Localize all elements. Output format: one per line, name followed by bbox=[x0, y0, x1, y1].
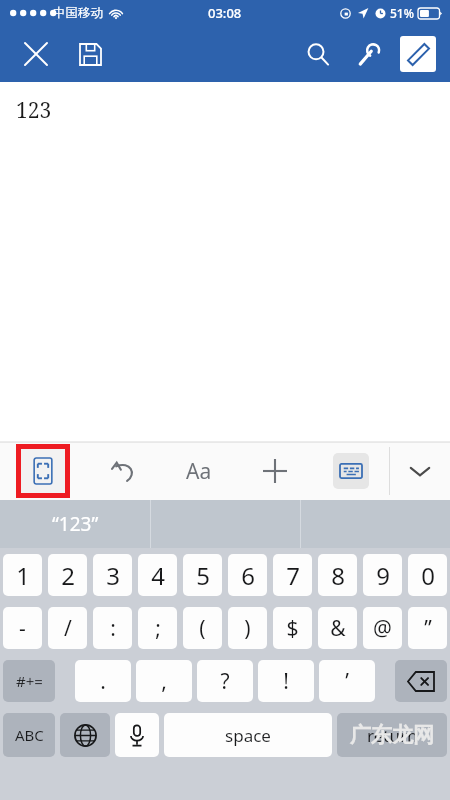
staticText: 1 bbox=[16, 559, 30, 592]
staticText: $ bbox=[286, 614, 299, 643]
button[interactable]: 8 bbox=[318, 554, 357, 596]
button[interactable]: / bbox=[48, 607, 87, 649]
button[interactable]: ? bbox=[197, 660, 253, 702]
staticText: 3 bbox=[106, 559, 120, 592]
button[interactable]: ’ bbox=[319, 660, 375, 702]
button[interactable]: Keyboard bbox=[313, 442, 389, 500]
staticText: ’ bbox=[345, 667, 349, 696]
button[interactable]: 2 bbox=[48, 554, 87, 596]
staticText: ( bbox=[199, 614, 206, 643]
staticText: / bbox=[64, 614, 72, 643]
button[interactable]: ; bbox=[138, 607, 177, 649]
button[interactable]: ! bbox=[258, 660, 314, 702]
button[interactable]: : bbox=[93, 607, 132, 649]
staticText: 7 bbox=[286, 559, 300, 592]
button[interactable]: Backspace bbox=[395, 660, 447, 702]
button[interactable]: 3 bbox=[93, 554, 132, 596]
staticText: 0 bbox=[421, 559, 435, 592]
button[interactable]: ” bbox=[408, 607, 447, 649]
staticText: 51% bbox=[390, 5, 414, 21]
staticText: return bbox=[367, 724, 418, 747]
staticText: “123” bbox=[52, 511, 99, 537]
staticText: 6 bbox=[241, 559, 255, 592]
staticText: - bbox=[19, 614, 26, 643]
button[interactable]: Save bbox=[68, 32, 112, 76]
button[interactable]: 0 bbox=[408, 554, 447, 596]
staticText: ABC bbox=[15, 725, 44, 745]
button[interactable]: $ bbox=[273, 607, 312, 649]
button[interactable]: & bbox=[318, 607, 357, 649]
button[interactable]: Insert bbox=[237, 442, 313, 500]
staticText: & bbox=[330, 614, 346, 643]
button[interactable]: , bbox=[136, 660, 192, 702]
staticText: . bbox=[100, 667, 106, 696]
button[interactable]: 7 bbox=[273, 554, 312, 596]
button[interactable]: 5 bbox=[183, 554, 222, 596]
button[interactable]: 6 bbox=[228, 554, 267, 596]
staticText: : bbox=[110, 614, 116, 643]
staticText: space bbox=[225, 724, 271, 747]
staticText: 123 bbox=[16, 96, 52, 125]
button[interactable]: Close bbox=[14, 32, 58, 76]
button[interactable]: ( bbox=[183, 607, 222, 649]
staticText: ” bbox=[424, 614, 432, 643]
button[interactable]: Edit bbox=[396, 32, 440, 76]
staticText: 5 bbox=[196, 559, 210, 592]
staticText: , bbox=[161, 667, 167, 696]
staticText: 2 bbox=[61, 559, 75, 592]
button[interactable]: 4 bbox=[138, 554, 177, 596]
button[interactable]: Font bbox=[161, 442, 237, 500]
button[interactable]: #+= bbox=[3, 660, 55, 702]
button[interactable]: @ bbox=[363, 607, 402, 649]
button[interactable]: 9 bbox=[363, 554, 402, 596]
button[interactable]: space bbox=[164, 713, 332, 757]
staticText: 中国移动 bbox=[53, 5, 103, 21]
staticText: ! bbox=[283, 667, 289, 696]
staticText: ; bbox=[155, 614, 161, 643]
button[interactable]: . bbox=[75, 660, 131, 702]
button[interactable]: Undo bbox=[86, 442, 161, 500]
button[interactable]: Expand bbox=[0, 442, 86, 500]
staticText: 8 bbox=[331, 559, 345, 592]
button[interactable]: Hide keyboard bbox=[390, 442, 450, 500]
staticText: 03:08 bbox=[208, 4, 242, 22]
button[interactable]: Search bbox=[296, 32, 340, 76]
button[interactable]: Tools bbox=[346, 32, 390, 76]
staticText: 9 bbox=[376, 559, 390, 592]
button[interactable]: ABC bbox=[3, 713, 55, 757]
staticText: 4 bbox=[151, 559, 165, 592]
button[interactable]: 1 bbox=[3, 554, 42, 596]
staticText: @ bbox=[373, 614, 392, 643]
staticText: #+= bbox=[16, 671, 43, 691]
staticText: 广东龙网 bbox=[350, 722, 434, 748]
button[interactable]: ) bbox=[228, 607, 267, 649]
staticText: ) bbox=[244, 614, 251, 643]
staticText: Aa bbox=[186, 457, 212, 486]
button[interactable]: - bbox=[3, 607, 42, 649]
button[interactable]: Voice input bbox=[115, 713, 159, 757]
button[interactable]: Change keyboard bbox=[60, 713, 110, 757]
button[interactable]: return bbox=[337, 713, 447, 757]
staticText: ? bbox=[220, 667, 230, 696]
button[interactable]: “123” bbox=[0, 500, 150, 548]
